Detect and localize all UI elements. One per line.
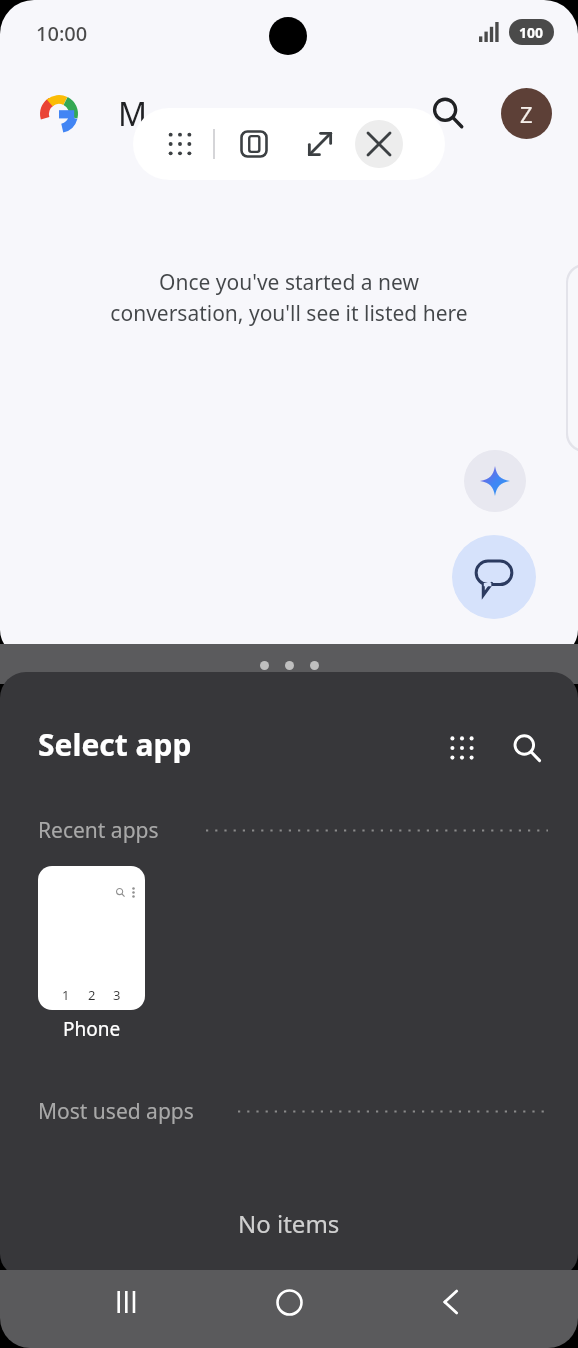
- button[interactable]: Close: [355, 120, 403, 168]
- button[interactable]: Back: [416, 1270, 486, 1334]
- button[interactable]: Gemini: [464, 450, 526, 512]
- staticText: 100: [519, 23, 544, 42]
- button[interactable]: Expand: [295, 119, 345, 169]
- staticText: 2: [88, 986, 96, 1004]
- other: Google: [40, 95, 78, 133]
- staticText: Select app: [38, 724, 192, 765]
- staticText: No items: [238, 1207, 340, 1240]
- button[interactable]: Recents: [92, 1270, 162, 1334]
- staticText: Z: [520, 99, 533, 129]
- staticText: Recent apps: [38, 816, 206, 845]
- button[interactable]: Home: [254, 1270, 324, 1334]
- staticText: Phone: [63, 1016, 121, 1042]
- button[interactable]: Search apps: [503, 724, 551, 772]
- button[interactable]: Account: [501, 88, 552, 139]
- button[interactable]: Grid view: [438, 724, 486, 772]
- button[interactable]: Popup view: [229, 119, 279, 169]
- button[interactable]: Search: [425, 90, 471, 136]
- button[interactable]: 1: [38, 866, 145, 1010]
- staticText: 3: [113, 986, 121, 1004]
- button[interactable]: Apps: [155, 119, 205, 169]
- staticText: Most used apps: [38, 1097, 238, 1126]
- staticText: 1: [62, 986, 70, 1004]
- staticText: 10:00: [36, 20, 88, 47]
- staticText: Once you've started a new conversation, …: [110, 268, 468, 327]
- button[interactable]: Start chat: [452, 535, 536, 619]
- staticText: M: [118, 92, 148, 136]
